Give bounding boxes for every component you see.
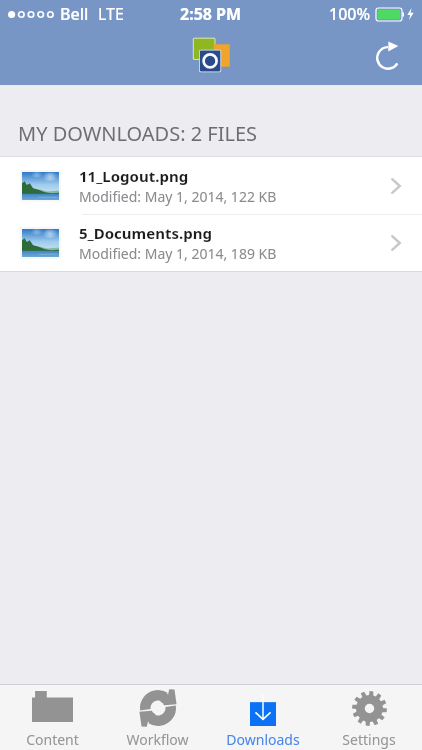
staticText: Content bbox=[26, 730, 79, 749]
staticText: Settings bbox=[342, 730, 396, 749]
staticText: 100% bbox=[329, 3, 371, 25]
staticText: 5_Documents.png bbox=[79, 223, 212, 243]
button[interactable]: 11_Logout.png bbox=[0, 157, 422, 214]
staticText: Bell bbox=[60, 3, 89, 25]
staticText: 2:58 PM bbox=[180, 3, 242, 25]
button[interactable]: App logo bbox=[185, 32, 237, 78]
button[interactable]: Settings bbox=[316, 685, 422, 750]
staticText: Workflow bbox=[126, 730, 189, 749]
staticText: Modified: May 1, 2014, 189 KB bbox=[79, 244, 277, 263]
button[interactable]: Workflow bbox=[105, 685, 210, 750]
staticText: MY DOWNLOADS: 2 FILES bbox=[18, 120, 258, 147]
button[interactable]: Downloads bbox=[210, 685, 316, 750]
staticText: Modified: May 1, 2014, 122 KB bbox=[79, 187, 277, 206]
staticText: Downloads bbox=[226, 730, 300, 749]
button[interactable]: Content bbox=[0, 685, 105, 750]
staticText: 11_Logout.png bbox=[79, 166, 189, 186]
button[interactable]: Refresh bbox=[366, 34, 410, 78]
button[interactable]: 5_Documents.png bbox=[0, 215, 422, 271]
staticText: LTE bbox=[98, 3, 124, 25]
